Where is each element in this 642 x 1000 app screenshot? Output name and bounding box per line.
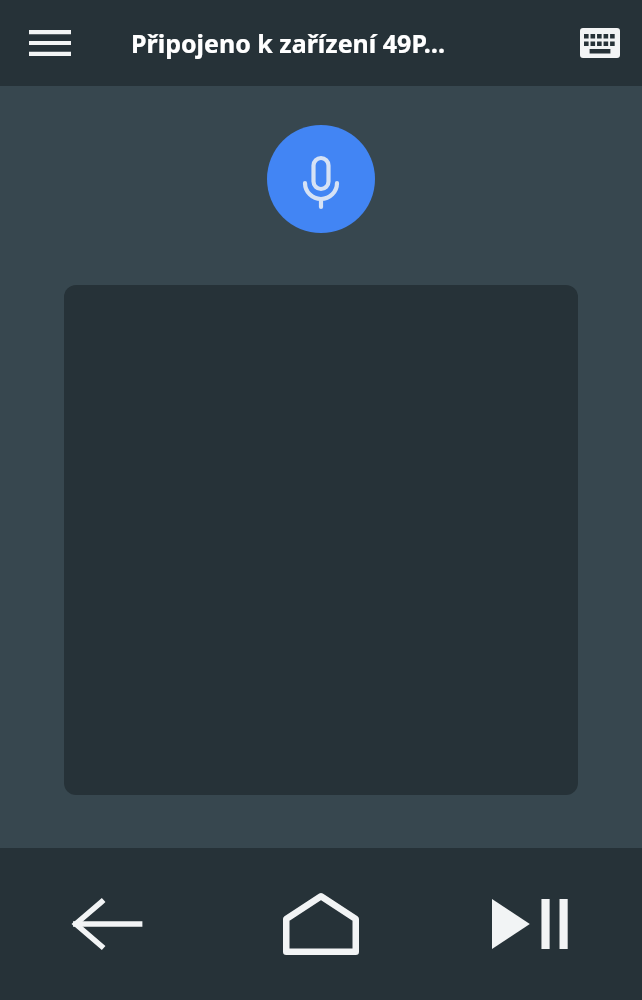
button[interactable]: Microphone xyxy=(267,125,375,233)
button[interactable]: Keyboard xyxy=(570,13,630,73)
staticText: Připojeno k zařízení 49P… xyxy=(131,26,551,60)
button[interactable]: Back xyxy=(0,848,214,1000)
button[interactable]: Menu xyxy=(14,7,86,79)
button[interactable]: Play pause xyxy=(428,848,642,1000)
button[interactable]: Home xyxy=(214,848,428,1000)
